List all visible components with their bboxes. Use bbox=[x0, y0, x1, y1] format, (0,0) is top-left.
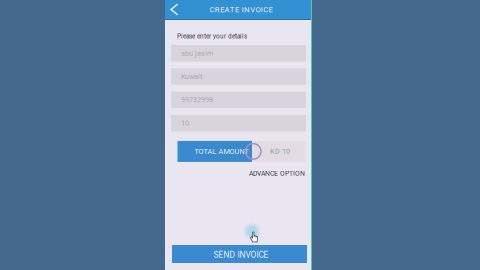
staticText: abu jasim bbox=[181, 49, 213, 57]
staticText: SEND INVOICE bbox=[213, 250, 268, 260]
button[interactable]: Back bbox=[165, 0, 185, 19]
button[interactable]: TOTAL AMOUNT bbox=[177, 141, 252, 162]
button[interactable]: SEND INVOICE bbox=[172, 245, 307, 263]
button[interactable]: ADVANCE OPTION bbox=[249, 167, 305, 179]
staticText: TOTAL AMOUNT bbox=[194, 147, 248, 156]
staticText: CREATE INVOICE bbox=[210, 5, 272, 14]
staticText: Please enter your details bbox=[177, 32, 247, 40]
staticText: ADVANCE OPTION bbox=[249, 169, 305, 177]
staticText: KD 10 bbox=[270, 147, 290, 156]
staticText: 99732998 bbox=[181, 96, 213, 104]
staticText: Kuwait bbox=[181, 72, 202, 81]
staticText: 10 bbox=[181, 119, 189, 127]
